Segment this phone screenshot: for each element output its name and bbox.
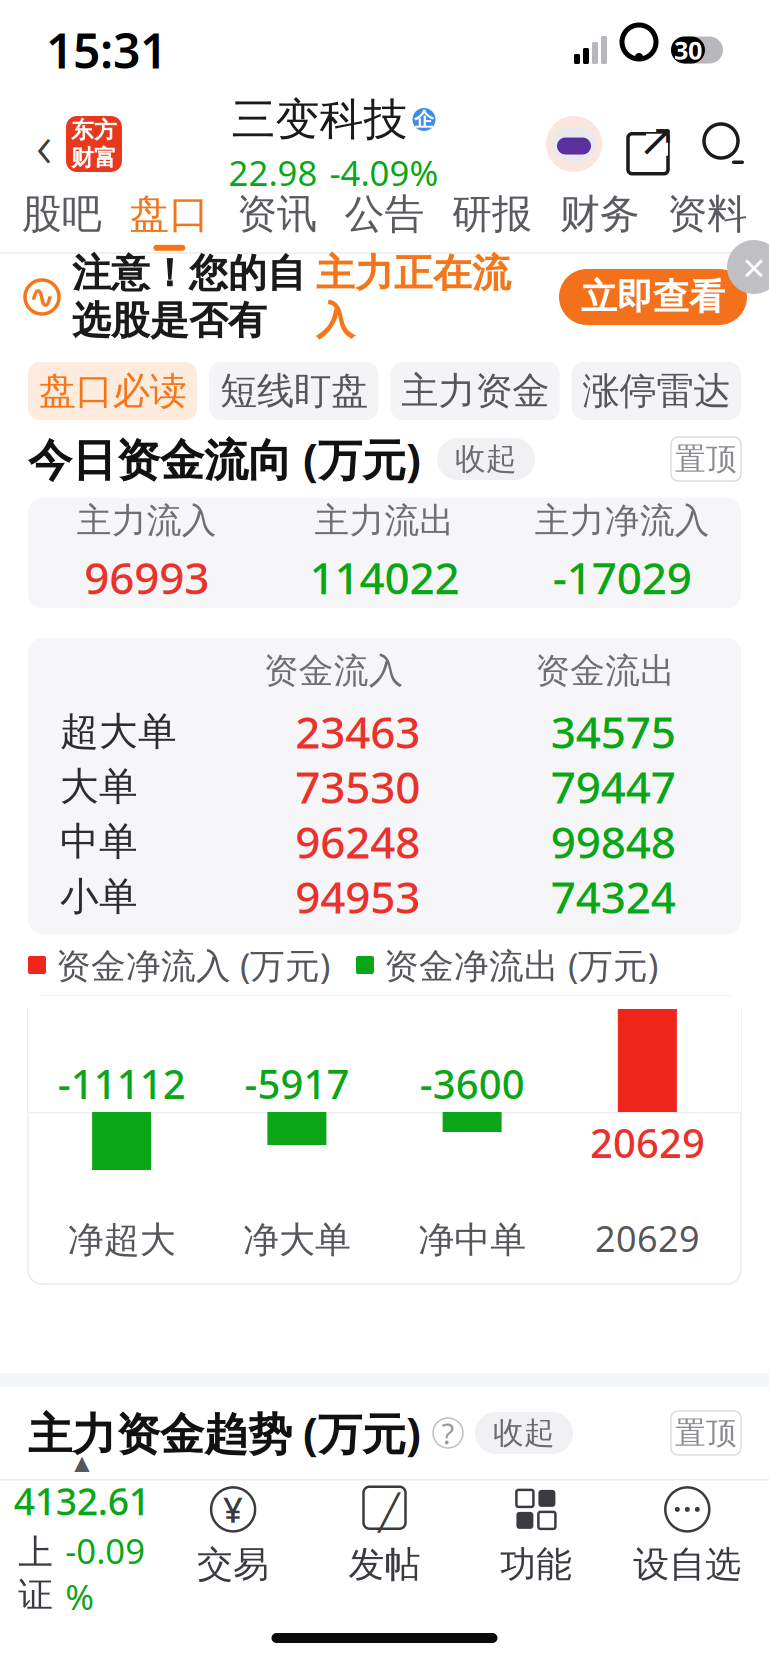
staticText: 主力资金 [401, 368, 549, 414]
button[interactable]: Search [701, 121, 747, 167]
staticText: 净大单 [243, 1218, 351, 1262]
staticText: 盘口必读 [39, 368, 187, 414]
staticText: 主力资金趋势 (万元) [28, 1404, 421, 1462]
staticText: -5917 [244, 1057, 349, 1110]
staticText: 主力流出 [314, 499, 454, 542]
staticText: 资金流出 [535, 650, 675, 692]
staticText: 15:31 [46, 18, 167, 82]
staticText: 盘口 [129, 190, 209, 239]
staticText: -11112 [58, 1057, 186, 1110]
staticText: 企 [414, 107, 434, 132]
staticText: 涨停雷达 [582, 368, 730, 414]
staticText: 发帖 [348, 1542, 420, 1587]
staticText: 资料 [667, 190, 747, 239]
button[interactable]: Back [22, 114, 66, 174]
staticText: 股吧 [22, 190, 102, 239]
staticText: 大单 [60, 763, 138, 810]
button[interactable]: Help [433, 1418, 463, 1448]
button[interactable]: 置顶 [671, 437, 741, 481]
staticText: ∿ [28, 279, 55, 315]
button[interactable]: 盘口必读 [28, 362, 197, 420]
staticText: 置顶 [675, 440, 737, 478]
button[interactable]: AI assistant [545, 115, 603, 173]
staticText: 99848 [551, 812, 676, 871]
button[interactable]: ¥ [157, 1480, 309, 1590]
staticText: 114022 [309, 548, 459, 606]
staticText: 资金净流出 (万元) [384, 942, 658, 988]
staticText: 短线盯盘 [220, 368, 368, 414]
staticText: 主力净流入 [535, 499, 710, 542]
staticText: 今日资金流向 (万元) [28, 430, 421, 488]
staticText: 三变科技 [231, 92, 407, 146]
staticText: 净中单 [418, 1218, 526, 1262]
staticText: ? [441, 1413, 454, 1452]
staticText: ╱ [378, 1493, 399, 1532]
staticText: 净超大 [68, 1218, 176, 1262]
staticText: ‹ [36, 103, 52, 185]
staticText: 94953 [295, 867, 420, 926]
button[interactable]: ▲ [6, 1480, 157, 1590]
staticText: 研报 [452, 190, 532, 239]
staticText: 22.98 [228, 149, 317, 195]
staticText: 资金流入 [264, 650, 404, 692]
button[interactable]: Share [629, 121, 675, 167]
staticText: 财务 [560, 190, 640, 239]
staticText: 立即查看 [581, 275, 725, 319]
staticText: 20629 [590, 1116, 705, 1169]
button[interactable]: 主力资金 [390, 362, 560, 420]
staticText: 4132.61 [14, 1476, 150, 1526]
staticText: 交易 [197, 1542, 269, 1587]
staticText: 功能 [500, 1542, 572, 1587]
button[interactable]: 短线盯盘 [209, 362, 378, 420]
staticText: -4.09% [329, 149, 438, 195]
staticText: 20629 [595, 1214, 700, 1262]
button[interactable]: ╱ [309, 1480, 460, 1590]
button[interactable]: 设自选 [612, 1480, 763, 1590]
staticText: 主力流入 [77, 499, 217, 542]
button[interactable]: 财务 [546, 188, 653, 252]
staticText: 资讯 [237, 190, 317, 239]
staticText: 置顶 [675, 1414, 737, 1452]
staticText: 东方 [71, 116, 117, 144]
staticText: 小单 [60, 873, 138, 920]
button[interactable]: 股吧 [8, 188, 116, 252]
button[interactable]: ∿ [0, 254, 769, 340]
staticText: -0.09% [65, 1528, 145, 1620]
staticText: 设自选 [633, 1542, 741, 1587]
staticText: 96248 [295, 812, 420, 871]
staticText: -3600 [420, 1057, 525, 1110]
staticText: 主力正在流入 [316, 249, 511, 344]
button[interactable]: 研报 [438, 188, 546, 252]
staticText: ▲ [74, 1451, 89, 1474]
staticText: 注意！您的自选股是否有 [72, 249, 306, 344]
staticText: ↗ [638, 114, 676, 166]
staticText: 收起 [455, 440, 517, 478]
button[interactable]: 置顶 [671, 1411, 741, 1455]
staticText: 公告 [344, 190, 424, 239]
button[interactable]: 功能 [460, 1480, 612, 1590]
staticText: 超大单 [60, 708, 177, 755]
button[interactable]: 收起 [475, 1412, 573, 1454]
button[interactable]: Close [727, 240, 769, 294]
staticText: 财富 [71, 144, 117, 172]
staticText: ¥ [223, 1486, 243, 1532]
button[interactable]: 盘口 [116, 188, 223, 252]
staticText: 23463 [295, 702, 420, 761]
button[interactable]: 公告 [331, 188, 438, 252]
staticText: 30 [674, 33, 702, 67]
staticText: 79447 [551, 757, 676, 816]
staticText: -17029 [553, 548, 692, 606]
staticText: 96993 [84, 548, 209, 606]
button[interactable]: 收起 [437, 438, 535, 480]
staticText: 上证 [18, 1531, 53, 1616]
button[interactable]: 东方财富 [66, 116, 122, 172]
staticText: 中单 [60, 818, 138, 865]
staticText: × [742, 240, 765, 293]
staticText: 73530 [295, 757, 420, 816]
button[interactable]: 资讯 [223, 188, 331, 252]
button[interactable]: 涨停雷达 [572, 362, 741, 420]
staticText: 收起 [493, 1414, 555, 1452]
staticText: 74324 [551, 867, 676, 926]
button[interactable]: 资料 [653, 188, 761, 252]
staticText: 资金净流入 (万元) [56, 942, 330, 988]
